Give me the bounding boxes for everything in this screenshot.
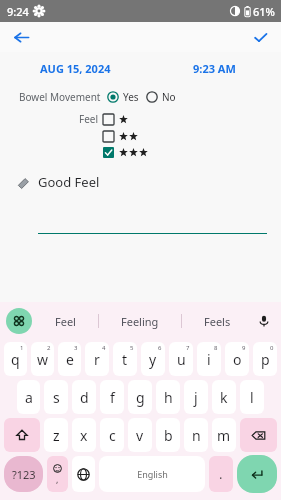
staticText: h: [164, 388, 173, 407]
staticText: d: [80, 388, 89, 407]
button[interactable]: c: [100, 418, 124, 452]
button[interactable]: f: [100, 380, 124, 414]
staticText: 9:23 AM: [193, 61, 236, 76]
staticText: u: [177, 350, 186, 369]
staticText: Bowel Movement: [19, 90, 101, 104]
button[interactable]: Emoji and comma: [47, 456, 68, 492]
button[interactable]: o: [225, 342, 249, 376]
staticText: s: [53, 388, 60, 407]
button[interactable]: Feels: [204, 314, 231, 329]
button[interactable]: Back: [6, 22, 36, 52]
button[interactable]: Feel: [55, 314, 76, 329]
staticText: 61%: [253, 4, 275, 19]
button[interactable]: b: [156, 418, 180, 452]
button[interactable]: 9:23 AM: [193, 61, 236, 76]
button[interactable]: m: [212, 418, 236, 452]
staticText: English: [137, 468, 168, 480]
button[interactable]: q: [4, 342, 27, 376]
staticText: m: [217, 426, 231, 445]
button[interactable]: Keyboard toolbar: [6, 308, 32, 334]
button[interactable]: y: [141, 342, 165, 376]
button[interactable]: x: [72, 418, 96, 452]
button[interactable]: Yes: [107, 90, 139, 104]
staticText: x: [80, 426, 88, 445]
button[interactable]: Backspace: [240, 418, 277, 452]
staticText: g: [136, 388, 145, 407]
staticText: j: [194, 388, 198, 407]
staticText: Good Feel: [38, 173, 100, 191]
button[interactable]: i: [197, 342, 221, 376]
button[interactable]: j: [184, 380, 208, 414]
staticText: v: [136, 426, 144, 445]
button[interactable]: Enter: [237, 455, 277, 493]
staticText: n: [192, 426, 201, 445]
staticText: 3: [74, 344, 78, 352]
staticText: ?123: [12, 467, 36, 482]
button[interactable]: [103, 114, 128, 125]
staticText: w: [37, 350, 49, 369]
button[interactable]: AUG 15, 2024: [40, 61, 111, 76]
button[interactable]: Voice input: [253, 310, 275, 332]
staticText: o: [233, 350, 242, 369]
staticText: b: [164, 426, 173, 445]
button[interactable]: [103, 131, 138, 142]
staticText: 7: [186, 344, 190, 352]
staticText: 6: [158, 344, 162, 352]
staticText: 1: [20, 344, 24, 352]
button[interactable]: No: [146, 90, 176, 104]
button[interactable]: h: [156, 380, 180, 414]
staticText: No: [162, 90, 176, 104]
button[interactable]: p: [253, 342, 277, 376]
button[interactable]: English: [99, 456, 205, 492]
staticText: p: [261, 350, 270, 369]
button[interactable]: z: [44, 418, 68, 452]
button[interactable]: k: [212, 380, 236, 414]
staticText: Feel: [79, 112, 99, 126]
button[interactable]: Shift: [4, 418, 40, 452]
staticText: .: [219, 465, 223, 483]
button[interactable]: l: [240, 380, 264, 414]
button[interactable]: w: [31, 342, 54, 376]
staticText: l: [250, 388, 254, 407]
staticText: Yes: [123, 90, 139, 104]
staticText: 9: [242, 344, 246, 352]
staticText: 8: [214, 344, 218, 352]
button[interactable]: n: [184, 418, 208, 452]
staticText: 2: [47, 344, 51, 352]
button[interactable]: s: [44, 380, 68, 414]
button[interactable]: Good Feel: [17, 173, 281, 191]
staticText: 5: [130, 344, 134, 352]
staticText: 4: [102, 344, 106, 352]
button[interactable]: Save: [245, 22, 275, 52]
button[interactable]: u: [169, 342, 193, 376]
staticText: q: [11, 350, 20, 369]
button[interactable]: e: [58, 342, 81, 376]
staticText: t: [122, 350, 128, 369]
staticText: ,: [56, 473, 59, 485]
staticText: y: [149, 350, 157, 369]
staticText: 0: [270, 344, 274, 352]
staticText: 9:24: [7, 4, 29, 19]
staticText: AUG 15, 2024: [40, 61, 111, 76]
button[interactable]: g: [128, 380, 152, 414]
button[interactable]: d: [72, 380, 96, 414]
staticText: f: [110, 388, 115, 407]
button[interactable]: v: [128, 418, 152, 452]
button[interactable]: t: [113, 342, 137, 376]
button[interactable]: Change language: [72, 456, 95, 492]
button[interactable]: [103, 147, 148, 158]
staticText: c: [109, 426, 116, 445]
staticText: e: [66, 350, 74, 369]
button[interactable]: Feeling: [121, 314, 159, 329]
staticText: a: [25, 388, 33, 407]
button[interactable]: .: [209, 456, 233, 492]
staticText: k: [220, 388, 228, 407]
button[interactable]: a: [17, 380, 40, 414]
button[interactable]: ?123: [4, 456, 43, 492]
staticText: r: [94, 350, 100, 369]
staticText: i: [207, 350, 211, 369]
staticText: z: [53, 426, 60, 445]
button[interactable]: r: [85, 342, 109, 376]
